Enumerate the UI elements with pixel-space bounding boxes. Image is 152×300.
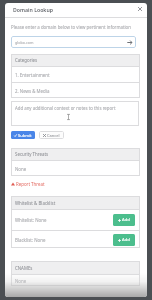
button[interactable]: Whitelist: None: [11, 210, 140, 230]
staticText: Blacklist: None: [15, 237, 46, 243]
button[interactable]: Domain Lookup: [5, 3, 147, 17]
staticText: Add any additional context or notes to t…: [15, 105, 116, 111]
button[interactable]: None: [11, 275, 140, 286]
staticText: Whitelist & Blacklist: [15, 200, 56, 206]
button[interactable]: Add: [113, 234, 135, 246]
button[interactable]: Add: [113, 214, 135, 226]
staticText: Whitelist: None: [15, 217, 47, 223]
button[interactable]: None: [11, 161, 140, 176]
button[interactable]: Report Threat: [11, 179, 45, 188]
button[interactable]: Close dialog: [134, 3, 146, 15]
staticText: globo.com: [15, 40, 34, 45]
button[interactable]: Add any additional context or notes to t…: [11, 101, 139, 126]
staticText: Submit: [18, 133, 32, 138]
button[interactable]: 2. News & Media: [11, 83, 140, 98]
staticText: None: [15, 166, 27, 172]
staticText: Report Threat: [16, 181, 45, 187]
staticText: 2. News & Media: [15, 88, 50, 94]
staticText: Please enter a domain below to view pert…: [11, 24, 131, 30]
staticText: Add: [122, 237, 130, 243]
staticText: None: [15, 278, 27, 284]
button[interactable]: Blacklist: None: [11, 231, 140, 248]
staticText: Add: [122, 217, 130, 223]
staticText: Domain Lookup: [13, 6, 53, 13]
staticText: Security Threats: [15, 151, 49, 157]
button[interactable]: 1. Entertainment: [11, 67, 140, 82]
staticText: CNAMEs: [15, 265, 33, 271]
button[interactable]: globo.com: [11, 36, 136, 48]
button[interactable]: Submit: [11, 131, 35, 139]
staticText: Categories: [15, 57, 38, 63]
button[interactable]: Cancel: [39, 131, 64, 139]
staticText: Cancel: [47, 133, 60, 138]
staticText: 1. Entertainment: [15, 72, 50, 78]
